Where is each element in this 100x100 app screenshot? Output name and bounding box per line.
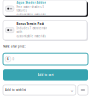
staticText: Name a fair price: xyxy=(3,45,26,48)
button[interactable]: Aqua Shader Addon xyxy=(3,0,88,17)
button[interactable]: Bonus Terrain Pack xyxy=(3,20,88,41)
staticText: customizable materials xyxy=(16,34,45,38)
button[interactable]: Add to cart xyxy=(3,69,88,81)
staticText: Add to wishlist xyxy=(5,88,26,92)
staticText: $ xyxy=(7,57,9,61)
staticText: Add to cart xyxy=(37,73,53,77)
staticText: ⌄ xyxy=(70,87,74,93)
button[interactable]: Add to wishlist xyxy=(3,85,76,95)
staticText: Free water shader+5 textures, xyxy=(16,5,44,12)
staticText: Bonus Terrain Pack xyxy=(16,22,44,26)
button[interactable]: Copy link xyxy=(78,85,88,95)
staticText: customizable materials xyxy=(16,13,45,16)
staticText: Includes 7 extra terrain with xyxy=(16,26,47,34)
staticText: Aqua Shader Addon xyxy=(16,1,46,4)
staticText: 0 xyxy=(13,57,15,61)
